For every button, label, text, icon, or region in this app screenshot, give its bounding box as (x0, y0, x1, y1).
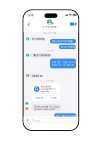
button[interactable]: Back (26, 21, 32, 28)
staticText: My school bag (32, 38, 45, 40)
staticText: Allow (50, 97, 57, 99)
staticText: Can one of you approve this? (33, 108, 55, 110)
staticText: Well spot job (32, 75, 43, 77)
staticText: Sure, give me a minute (56, 115, 78, 117)
staticText: Great job! I sent you the (51, 61, 75, 64)
staticText: message 'John' on (41, 88, 56, 90)
staticText: Message (32, 119, 40, 122)
staticText: money for the field trip (51, 64, 73, 66)
staticText: 9:41 (28, 14, 34, 17)
staticText: Ryan asked to (41, 86, 52, 88)
staticText: You are welcome (60, 46, 76, 48)
staticText: John messaged me. It's for school. (33, 106, 58, 108)
staticText: I did my homework (32, 54, 51, 57)
button[interactable]: Message (30, 119, 77, 122)
button[interactable]: Video call (69, 21, 78, 27)
staticText: 3 People (43, 25, 57, 28)
staticText: Yours are in the fridge (51, 40, 72, 43)
staticText: yesterday (41, 90, 50, 92)
staticText: 9:43 AM (46, 50, 54, 52)
staticText: › (57, 25, 58, 28)
button[interactable]: Decline (32, 95, 46, 100)
staticText: Tap to review (41, 92, 50, 94)
button[interactable]: Add attachment (26, 118, 29, 122)
staticText: Decline (35, 97, 43, 99)
button[interactable]: Allow (46, 95, 60, 100)
staticText: Today 9:41 AM (43, 32, 57, 34)
button[interactable]: 3 People (42, 19, 59, 29)
staticText: 9:44 AM (46, 80, 54, 82)
